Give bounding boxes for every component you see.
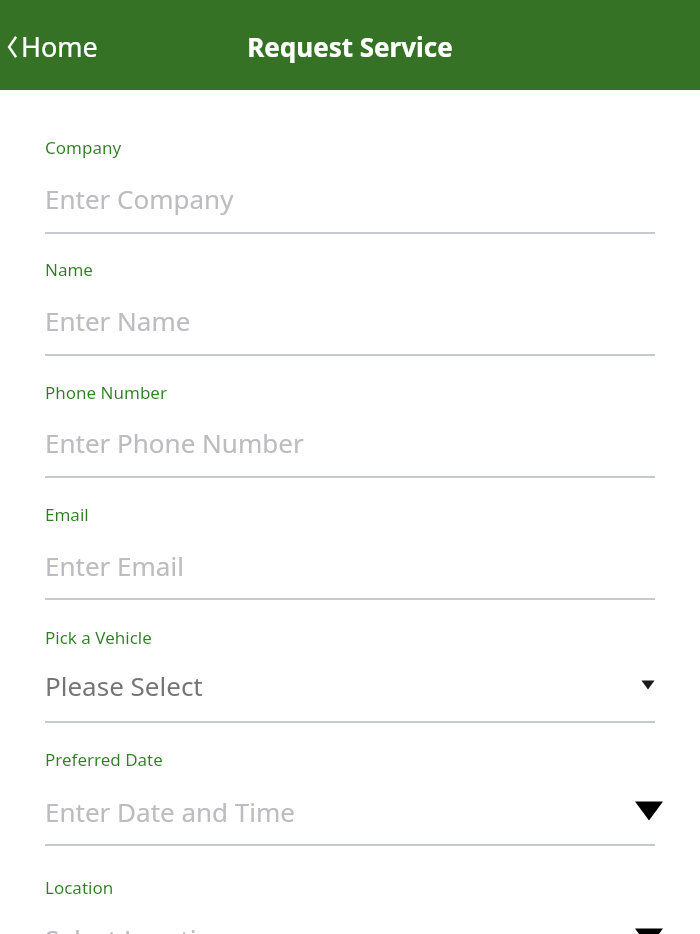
staticText: Preferred Date [45,748,163,771]
staticText: Please Select [45,668,203,703]
staticText: Pick a Vehicle [45,626,152,649]
staticText: Select Location [45,921,229,934]
staticText: Enter Name [45,303,191,338]
button[interactable]: Enter Phone Number [0,422,700,462]
staticText: Request Service [247,29,453,64]
other: Open picker [640,677,656,693]
button[interactable]: Enter Email [0,545,700,585]
staticText: Enter Company [45,181,234,216]
staticText: Phone Number [45,381,167,404]
staticText: Email [45,503,89,526]
other: Open date picker [634,796,664,826]
staticText: Home [21,28,98,65]
staticText: Name [45,258,93,281]
button[interactable]: Enter Name [0,300,700,340]
staticText: Enter Date and Time [45,794,295,829]
button[interactable]: Enter Date and Time [0,791,700,831]
staticText: Location [45,876,114,899]
button[interactable]: Home [6,28,98,65]
staticText: Enter Phone Number [45,425,304,460]
staticText: Company [45,136,122,159]
button[interactable]: Please Select [0,665,700,705]
staticText: Enter Email [45,548,184,583]
button[interactable]: Enter Company [0,178,700,218]
button[interactable]: Select Location [0,918,700,934]
other: Open date picker [634,923,664,934]
